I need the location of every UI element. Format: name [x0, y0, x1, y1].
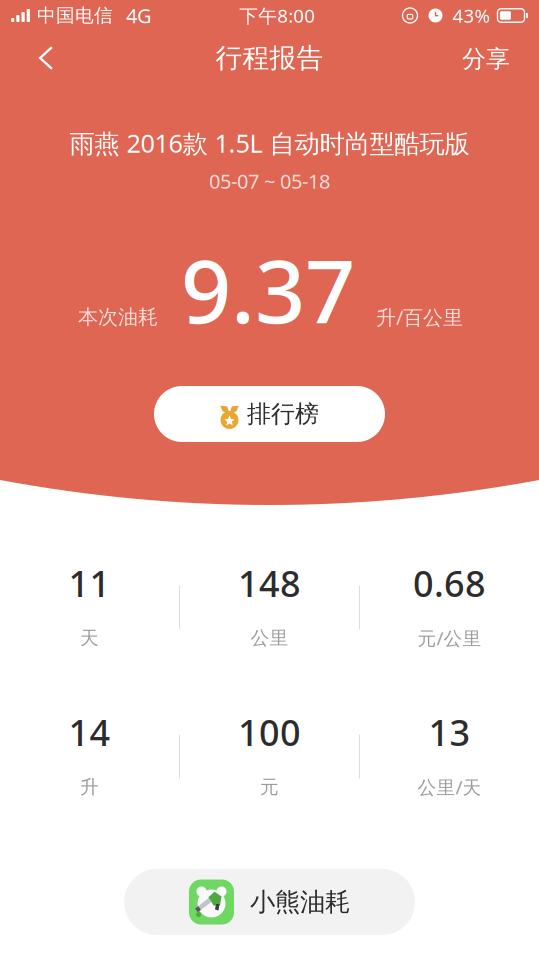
staticText: 148 — [238, 559, 301, 607]
staticText: 100 — [238, 708, 301, 756]
staticText: 天 — [80, 626, 99, 649]
button[interactable]: 返回 — [13, 31, 67, 81]
staticText: 行程报告 — [215, 42, 323, 74]
staticText: 雨燕 2016款 1.5L 自动时尚型酷玩版 — [69, 126, 469, 160]
staticText: 分享 — [462, 44, 510, 74]
staticText: 公里 — [250, 626, 288, 649]
button[interactable]: 分享 — [449, 31, 523, 81]
staticText: 小熊油耗 — [250, 886, 350, 917]
staticText: 0.68 — [413, 559, 486, 607]
staticText: 本次油耗 — [78, 305, 158, 329]
button[interactable]: 小熊油耗 — [124, 869, 415, 935]
button[interactable]: 排行榜 — [154, 386, 385, 442]
staticText: 11 — [68, 559, 110, 607]
staticText: 4G — [126, 2, 152, 29]
staticText: 14 — [68, 708, 110, 756]
staticText: 升/百公里 — [376, 304, 463, 330]
staticText: 排行榜 — [247, 399, 319, 429]
staticText: 中国电信 — [37, 4, 113, 27]
staticText: 13 — [428, 708, 470, 756]
staticText: 下午8:00 — [239, 3, 315, 28]
staticText: 元 — [260, 775, 279, 798]
staticText: 升 — [80, 775, 99, 798]
staticText: 公里/天 — [417, 775, 481, 799]
staticText: 9.37 — [181, 231, 355, 347]
staticText: 43% — [452, 3, 490, 28]
staticText: 05-07 ~ 05-18 — [209, 168, 330, 194]
staticText: 元/公里 — [417, 626, 481, 650]
